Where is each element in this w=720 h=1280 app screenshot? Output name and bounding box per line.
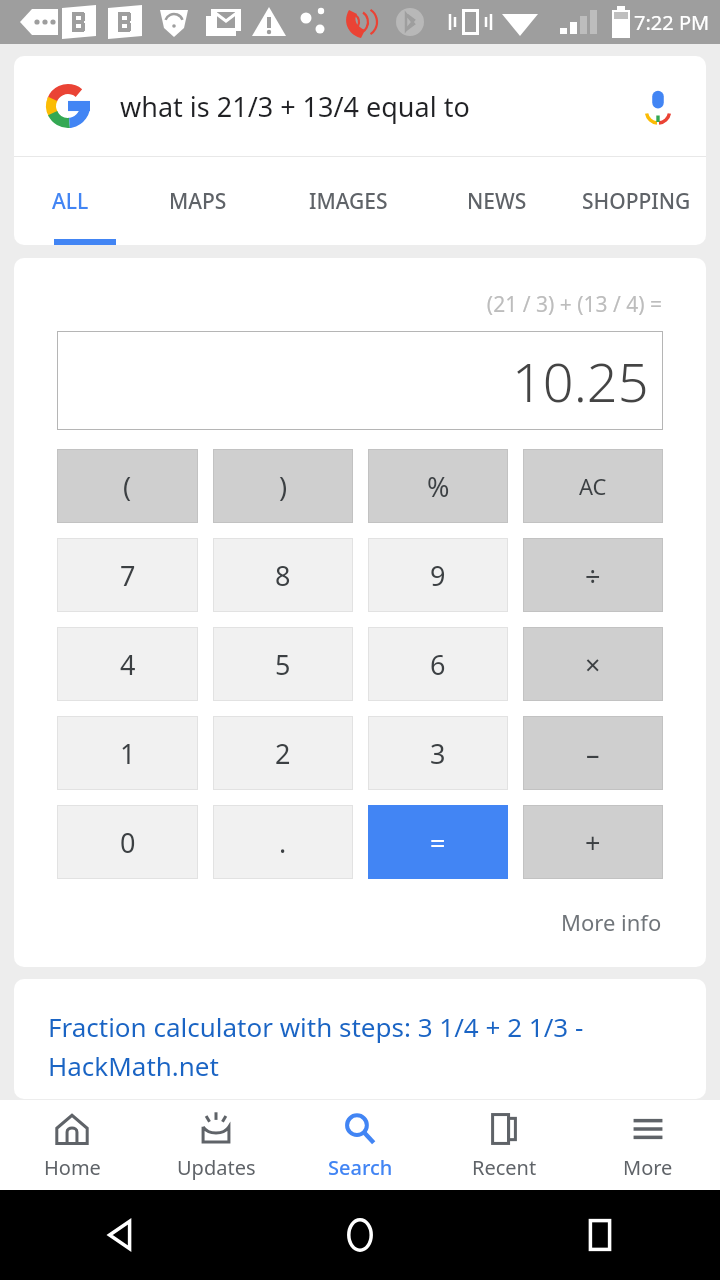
staticText: 7:22 PM	[634, 9, 710, 36]
button[interactable]: ×	[523, 627, 663, 701]
staticText: Recent	[472, 1154, 537, 1181]
staticText: 0	[120, 824, 136, 861]
button[interactable]: 5	[213, 627, 353, 701]
button[interactable]: NEWS	[427, 157, 567, 245]
button[interactable]: ÷	[523, 538, 663, 612]
button[interactable]: )	[213, 449, 353, 523]
staticText: 3	[430, 735, 446, 772]
staticText: Fraction calculator with steps: 3 1/4 + …	[48, 1009, 676, 1083]
button[interactable]: 3	[368, 716, 508, 790]
button[interactable]: =	[368, 805, 508, 879]
button[interactable]: +	[523, 805, 663, 879]
staticText: what is 21/3 + 13/4 equal to	[120, 88, 630, 125]
staticText: 9	[430, 557, 446, 594]
staticText: ÷	[585, 557, 601, 594]
button[interactable]: .	[213, 805, 353, 879]
staticText: =	[430, 824, 446, 861]
button[interactable]: Fraction calculator with steps: 3 1/4 + …	[14, 979, 706, 1099]
staticText: 5	[275, 646, 291, 683]
button[interactable]: –	[523, 716, 663, 790]
button[interactable]: Voice search	[630, 78, 686, 134]
button[interactable]: IMAGES	[270, 157, 427, 245]
staticText: ×	[585, 646, 601, 683]
staticText: (21 / 3) + (13 / 4) =	[14, 290, 662, 319]
staticText: Home	[44, 1154, 101, 1181]
staticText: –	[586, 735, 600, 772]
button[interactable]: ALL	[14, 157, 126, 245]
staticText: 7	[120, 557, 136, 594]
staticText: Updates	[177, 1154, 256, 1181]
staticText: %	[427, 468, 450, 505]
staticText: Search	[328, 1154, 393, 1181]
button[interactable]: (	[57, 449, 198, 523]
staticText: (	[123, 468, 132, 505]
button[interactable]: 6	[368, 627, 508, 701]
staticText: 10.25	[512, 344, 649, 418]
staticText: 1	[120, 735, 136, 772]
button[interactable]: 4	[57, 627, 198, 701]
button[interactable]: 8	[213, 538, 353, 612]
button[interactable]: Home	[0, 1100, 144, 1190]
staticText: 4	[120, 646, 136, 683]
staticText: 8	[275, 557, 291, 594]
staticText: More	[623, 1154, 673, 1181]
staticText: AC	[579, 471, 607, 501]
button[interactable]: More	[576, 1100, 720, 1190]
staticText: )	[279, 468, 288, 505]
button[interactable]: Updates	[144, 1100, 288, 1190]
button[interactable]: 7	[57, 538, 198, 612]
button[interactable]: 9	[368, 538, 508, 612]
button[interactable]: what is 21/3 + 13/4 equal to	[14, 56, 706, 156]
button[interactable]: Search	[288, 1100, 432, 1190]
staticText: 2	[275, 735, 291, 772]
button[interactable]: SHOPPING	[567, 157, 706, 245]
button[interactable]: AC	[523, 449, 663, 523]
button[interactable]: Recents	[480, 1190, 720, 1280]
button[interactable]: Back	[0, 1190, 240, 1280]
button[interactable]: More info	[561, 907, 662, 937]
staticText: +	[585, 824, 601, 861]
staticText: MAPS	[169, 187, 227, 216]
button[interactable]: 2	[213, 716, 353, 790]
button[interactable]: %	[368, 449, 508, 523]
staticText: IMAGES	[309, 187, 388, 216]
staticText: NEWS	[467, 187, 527, 216]
staticText: 6	[430, 646, 446, 683]
staticText: SHOPPING	[582, 187, 691, 216]
button[interactable]: 0	[57, 805, 198, 879]
button[interactable]: Home	[240, 1190, 480, 1280]
staticText: More info	[561, 907, 662, 937]
button[interactable]: Recent	[432, 1100, 576, 1190]
staticText: ALL	[52, 187, 89, 216]
staticText: .	[279, 824, 287, 861]
button[interactable]: 1	[57, 716, 198, 790]
button[interactable]: MAPS	[126, 157, 270, 245]
